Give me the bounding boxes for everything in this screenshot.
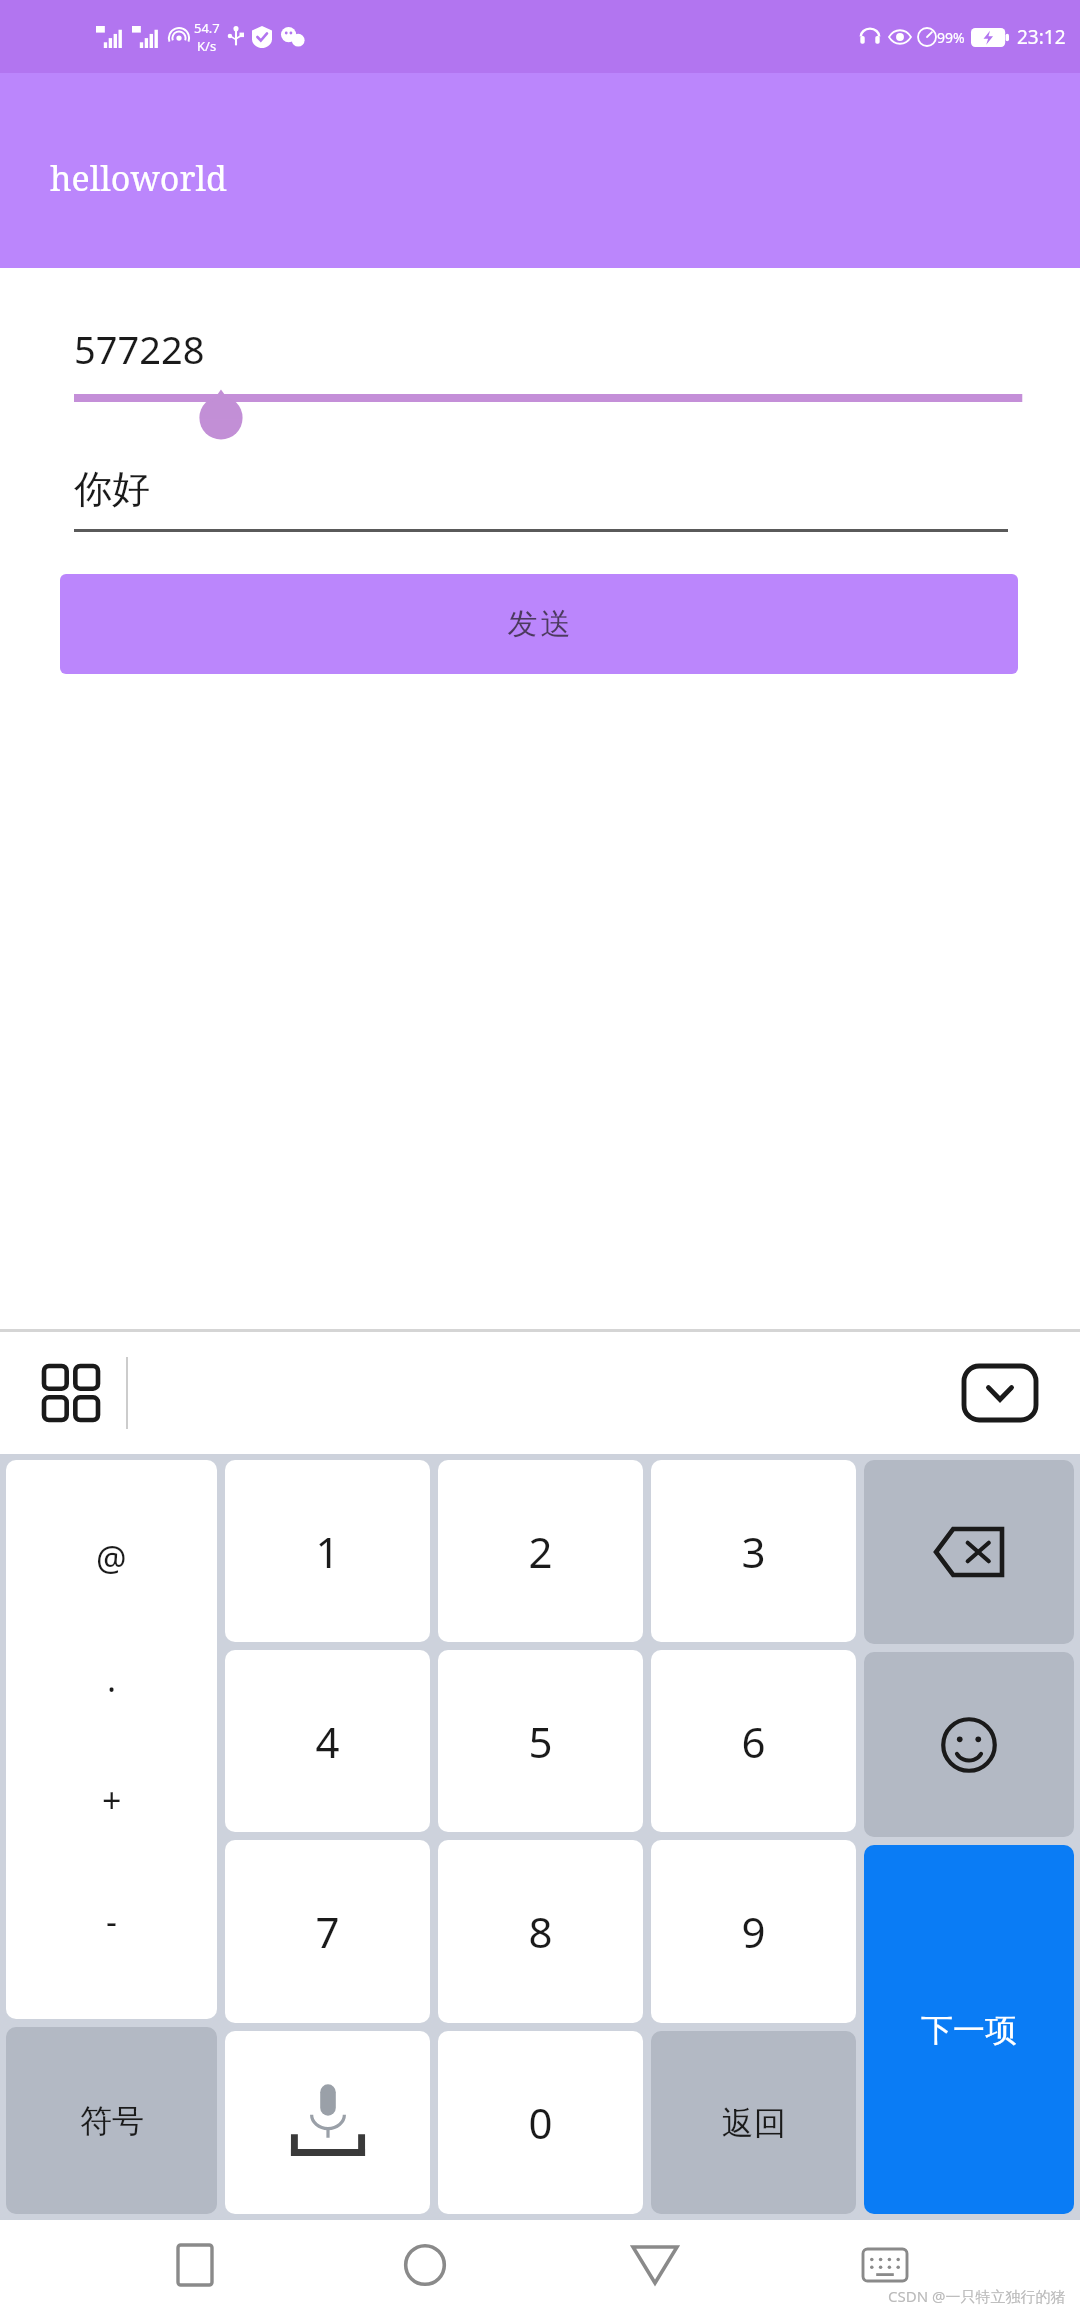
- staticText: 发送: [506, 605, 572, 643]
- staticText: 5: [528, 1713, 553, 1770]
- staticText: 1: [315, 1523, 340, 1580]
- button[interactable]: Key: [225, 2031, 430, 2214]
- staticText: 0: [528, 2094, 553, 2151]
- button[interactable]: Key: [864, 1652, 1074, 1837]
- button[interactable]: 0: [438, 2031, 643, 2214]
- staticText: CSDN @一只特立独行的猪: [888, 2286, 1066, 2306]
- button[interactable]: 5: [438, 1650, 643, 1832]
- staticText: K/s: [197, 37, 217, 55]
- button[interactable]: 符号: [6, 2027, 217, 2214]
- staticText: 4: [315, 1713, 340, 1770]
- button[interactable]: Hide keyboard: [964, 1366, 1036, 1420]
- staticText: .: [107, 1656, 117, 1702]
- staticText: 99%: [937, 28, 965, 47]
- button[interactable]: Recents: [160, 2230, 230, 2300]
- staticText: @: [96, 1535, 127, 1581]
- button[interactable]: Switch keyboard: [850, 2230, 920, 2300]
- staticText: 577228: [74, 323, 205, 375]
- button[interactable]: Home: [390, 2230, 460, 2300]
- staticText: 6: [741, 1713, 766, 1770]
- staticText: 3: [741, 1523, 766, 1580]
- button[interactable]: 发送: [60, 574, 1018, 674]
- staticText: -: [106, 1898, 117, 1944]
- staticText: 返回: [722, 2103, 786, 2143]
- staticText: 2: [528, 1523, 553, 1580]
- button[interactable]: Back: [620, 2230, 690, 2300]
- button[interactable]: 7: [225, 1840, 430, 2023]
- staticText: 8: [528, 1903, 553, 1960]
- staticText: 54.7: [194, 19, 220, 37]
- button[interactable]: 4: [225, 1650, 430, 1832]
- button[interactable]: 6: [651, 1650, 856, 1832]
- staticText: 符号: [80, 2101, 144, 2141]
- button[interactable]: 2: [438, 1460, 643, 1642]
- staticText: 9: [741, 1903, 766, 1960]
- button[interactable]: 3: [651, 1460, 856, 1642]
- button[interactable]: Slider: [0, 389, 1080, 449]
- staticText: helloworld: [50, 155, 227, 201]
- button[interactable]: Key: [864, 1460, 1074, 1644]
- button[interactable]: 下一项: [864, 1845, 1074, 2214]
- button[interactable]: 8: [438, 1840, 643, 2023]
- staticText: +: [102, 1777, 122, 1823]
- staticText: 23:12: [1017, 24, 1066, 50]
- button[interactable]: 返回: [651, 2031, 856, 2214]
- staticText: 下一项: [921, 2010, 1017, 2050]
- button[interactable]: 1: [225, 1460, 430, 1642]
- button[interactable]: 9: [651, 1840, 856, 2023]
- button[interactable]: Keyboard layouts: [44, 1366, 98, 1420]
- staticText: 7: [315, 1903, 340, 1960]
- button[interactable]: Key: [6, 1460, 217, 2019]
- staticText: 你好: [74, 465, 150, 513]
